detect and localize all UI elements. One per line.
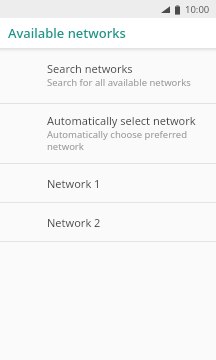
staticText: Available networks — [8, 24, 126, 42]
staticText: Automatically choose preferred network — [47, 128, 188, 153]
staticText: 10:00 — [185, 3, 210, 16]
staticText: Network 1 — [47, 176, 101, 191]
button[interactable]: Network 2 — [0, 203, 216, 241]
staticText: Search for all available networks — [47, 76, 191, 89]
staticText: Automatically select network — [47, 113, 196, 128]
other: Battery — [175, 5, 180, 15]
button[interactable]: Search networks — [0, 52, 216, 103]
button[interactable]: Network 1 — [0, 164, 216, 202]
other: Signal strength — [161, 5, 170, 14]
staticText: Search networks — [47, 61, 133, 76]
button[interactable]: Automatically select network — [0, 104, 216, 163]
staticText: Network 2 — [47, 215, 101, 230]
